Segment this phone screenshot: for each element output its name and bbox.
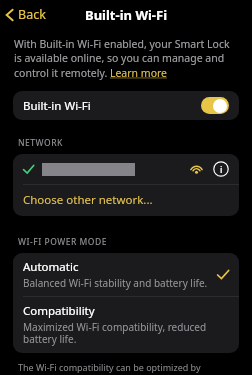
staticText: Back: [18, 6, 46, 23]
staticText: i: [220, 163, 223, 175]
staticText: With Built-in Wi-Fi enabled, your Smart …: [14, 37, 236, 80]
staticText: Choose other network...: [23, 192, 153, 208]
other: Wi-Fi signal strength: [190, 164, 203, 174]
button[interactable]: Wi-Fi signal strength: [13, 154, 239, 184]
button[interactable]: Built-in Wi-Fi: [13, 91, 239, 120]
button[interactable]: Choose other network...: [13, 185, 239, 216]
button[interactable]: Automatic: [13, 253, 239, 296]
staticText: Compatibility: [23, 303, 95, 319]
staticText: NETWORK: [18, 137, 63, 149]
staticText: Built-in Wi-Fi: [85, 6, 168, 24]
staticText: WI-FI POWER MODE: [18, 236, 107, 248]
staticText: The Wi-Fi compatibility can be optimized…: [18, 361, 236, 375]
button[interactable]: Network information: [213, 161, 229, 177]
staticText: Maximized Wi-Fi compatibility, reduced b…: [23, 320, 211, 346]
button[interactable]: Compatibility: [13, 297, 239, 353]
staticText: Balanced Wi-Fi stability and battery lif…: [23, 276, 208, 290]
staticText: Automatic: [23, 259, 79, 275]
button[interactable]: Back: [0, 3, 54, 26]
staticText: Built-in Wi-Fi: [23, 98, 91, 114]
other: Built-in Wi-Fi toggle, on: [201, 97, 229, 114]
